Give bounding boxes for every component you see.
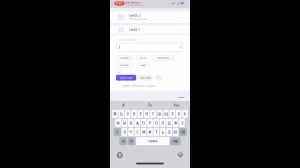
button[interactable]: Х xyxy=(176,110,181,118)
staticText: Переименовать xyxy=(157,57,170,59)
button[interactable]: Ы xyxy=(122,119,127,127)
button[interactable]: Б xyxy=(166,128,172,136)
button[interactable]: Д xyxy=(166,119,172,127)
staticText: Р xyxy=(149,120,151,125)
button[interactable]: Гаджет xyxy=(137,63,148,67)
button[interactable]: Лот-до xyxy=(137,56,148,60)
staticText: ‹ xyxy=(118,95,119,100)
button[interactable]: И xyxy=(147,128,153,136)
button[interactable]: К xyxy=(131,110,137,118)
button[interactable]: У xyxy=(125,110,130,118)
staticText: Ш xyxy=(158,111,162,116)
staticText: ◢ xyxy=(176,1,178,5)
staticText: И xyxy=(148,129,151,135)
button[interactable]: М xyxy=(141,128,146,136)
staticText: Гаджет xyxy=(140,64,146,66)
button[interactable]: Полный цикл xyxy=(116,75,136,81)
staticText: Настройки xyxy=(120,64,129,66)
button[interactable]: Ввод xyxy=(170,137,181,145)
button[interactable]: Часть цикла xyxy=(139,75,153,81)
button[interactable]: Переименовать xyxy=(153,56,174,60)
button[interactable]: Автономно xyxy=(117,56,132,60)
staticText: З xyxy=(171,111,173,116)
button[interactable]: З xyxy=(170,110,175,118)
button[interactable]: Я xyxy=(122,128,127,136)
staticText: Лот-до xyxy=(139,57,145,59)
staticText: Ы xyxy=(123,120,126,125)
button[interactable]: Дополнительно xyxy=(155,75,162,81)
button[interactable]: Г xyxy=(150,110,156,118)
staticText: ⌄ xyxy=(180,28,183,32)
button[interactable]: Т xyxy=(154,128,159,136)
staticText: 9:41 xyxy=(116,1,123,5)
button[interactable]: Ц xyxy=(118,110,124,118)
button[interactable]: Switch 1 xyxy=(110,25,190,34)
staticText: Т xyxy=(155,129,157,135)
button[interactable]: Э xyxy=(179,119,185,127)
button[interactable]: А xyxy=(134,119,140,127)
button[interactable]: Клавиатура эмодзи xyxy=(117,152,123,158)
staticText: Ъ xyxy=(184,111,187,116)
button[interactable]: Щ xyxy=(163,110,169,118)
staticText: П xyxy=(142,120,145,125)
staticText: Щ xyxy=(164,111,168,116)
staticText: WiFi Switch 2 xyxy=(125,1,140,4)
button[interactable]: Готово xyxy=(178,95,190,99)
button[interactable]: Switch 2 xyxy=(110,11,190,23)
button[interactable]: Ж xyxy=(173,119,178,127)
staticText: ⊗ xyxy=(179,45,181,49)
staticText: Автономно xyxy=(120,57,129,59)
staticText: ⋯ xyxy=(157,76,160,79)
button[interactable]: Настройки xyxy=(117,63,133,67)
button[interactable]: Н xyxy=(144,110,150,118)
staticText: Ч xyxy=(129,129,132,135)
staticText: Switch 1 xyxy=(129,28,141,32)
button[interactable]: Следующее поле xyxy=(120,95,125,100)
button[interactable]: Как xyxy=(163,101,190,110)
staticText: Часть цикла xyxy=(140,76,151,79)
staticText: С xyxy=(136,129,138,135)
button[interactable]: Предыдущее поле xyxy=(116,95,120,100)
staticText: Switch 2 xyxy=(129,14,141,18)
button[interactable]: Й xyxy=(112,110,118,118)
staticText: К xyxy=(133,111,135,116)
staticText: Ц xyxy=(120,111,123,116)
button[interactable]: Верхний регистр xyxy=(114,128,121,136)
button[interactable]: Диктовка xyxy=(177,152,183,158)
button[interactable]: Эмодзи xyxy=(128,137,135,145)
button[interactable]: Ч xyxy=(128,128,134,136)
button[interactable]: Ю xyxy=(173,128,178,136)
button[interactable]: Е xyxy=(138,110,143,118)
button[interactable]: В xyxy=(128,119,134,127)
staticText: ⌫ xyxy=(180,130,185,134)
staticText: А xyxy=(136,120,138,125)
button[interactable]: О xyxy=(154,119,159,127)
staticText: Д xyxy=(168,120,171,125)
staticText: ☺ xyxy=(129,139,133,143)
button[interactable]: П xyxy=(141,119,146,127)
button[interactable]: 123 xyxy=(119,137,127,145)
button[interactable]: Ъ xyxy=(182,110,188,118)
button[interactable]: Р xyxy=(147,119,153,127)
staticText: Ввод xyxy=(172,139,178,143)
button[interactable]: Л xyxy=(160,119,166,127)
staticText: Б xyxy=(168,129,170,135)
button[interactable]: Русский xyxy=(136,137,169,145)
button[interactable]: Удалить xyxy=(179,128,186,136)
staticText: И xyxy=(122,103,124,107)
staticText: Ю xyxy=(173,129,177,135)
staticText: ⇧ xyxy=(116,130,119,134)
staticText: Готово xyxy=(178,95,184,99)
button[interactable]: Ф xyxy=(115,119,121,127)
button[interactable]: Ь xyxy=(160,128,166,136)
staticText: М xyxy=(142,129,145,135)
button[interactable]: По xyxy=(137,101,163,110)
staticText: Э xyxy=(181,120,183,125)
button[interactable]: И xyxy=(110,101,137,110)
staticText: Выберите нагрузку для устройства xyxy=(121,84,154,87)
staticText: Ж xyxy=(174,120,177,125)
button[interactable]: С xyxy=(134,128,140,136)
staticText: Шаг xyxy=(117,70,121,73)
button[interactable]: Ш xyxy=(157,110,162,118)
staticText: ⌄ xyxy=(180,15,183,19)
